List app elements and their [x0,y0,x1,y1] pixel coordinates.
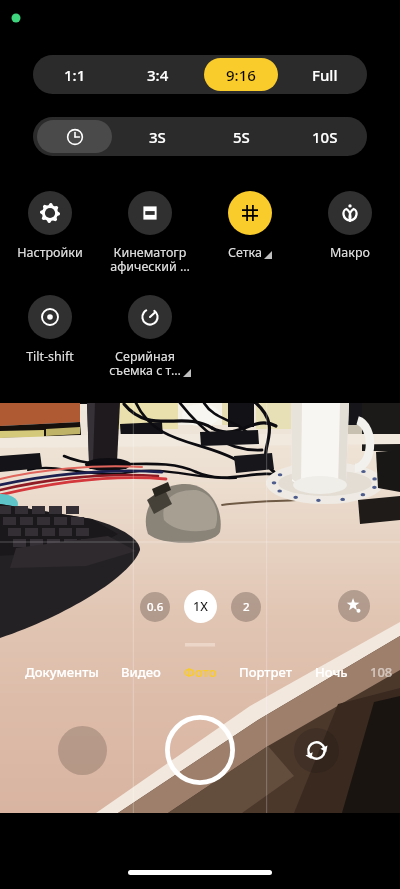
button[interactable]: Switch camera [294,728,339,773]
button[interactable]: Серийная съемка с т… [100,295,200,379]
button[interactable]: Портрет [236,658,295,686]
staticText: 3:4 [147,65,169,85]
button[interactable]: Макро [300,191,400,261]
button[interactable]: 0.6 [140,592,170,622]
staticText: 108 [370,663,393,681]
button[interactable]: Shutter [165,715,235,785]
button[interactable]: Сетка [200,191,300,261]
button[interactable]: Gallery [58,726,107,775]
button[interactable]: Ночь [312,658,351,686]
button[interactable]: Timer off [37,120,112,153]
staticText: Настройки [17,244,83,261]
staticText: 9:16 [226,65,256,85]
button[interactable]: 2 [231,592,261,622]
staticText: Макро [330,244,370,261]
button[interactable]: Документы [22,658,102,686]
staticText: Видео [121,663,161,681]
staticText: Документы [25,663,99,681]
staticText: 0.6 [147,599,164,615]
button[interactable]: 1X [184,590,217,623]
staticText: Сетка [228,244,262,261]
staticText: 3S [149,127,166,147]
staticText: 2 [243,599,250,615]
staticText: 10S [312,127,338,147]
staticText: 1:1 [64,65,86,85]
button[interactable]: Фото [181,658,220,686]
button[interactable]: Filters [338,590,370,622]
staticText: Tilt-shift [26,348,74,365]
button[interactable]: Видео [118,658,164,686]
button[interactable]: Кинематогр афический … [100,191,200,275]
button[interactable]: 9:16 [204,58,278,91]
button[interactable]: 108 [367,658,396,686]
button[interactable]: 1:1 [38,58,111,91]
button[interactable]: 5S [199,117,283,156]
staticText: 5S [233,127,250,147]
button[interactable]: 3:4 [121,58,194,91]
staticText: Кинематогр афический … [110,244,190,275]
button[interactable]: Tilt-shift [0,295,100,365]
staticText: 1X [193,598,208,615]
button[interactable]: Настройки [0,191,100,261]
button[interactable]: 10S [283,117,367,156]
staticText: Фото [184,663,217,681]
staticText: Full [312,65,338,85]
button[interactable]: 3S [116,117,199,156]
staticText: Серийная съемка с т… [109,348,181,379]
staticText: Ночь [315,663,348,681]
staticText: Портрет [239,663,292,681]
button[interactable]: Full [288,58,362,91]
